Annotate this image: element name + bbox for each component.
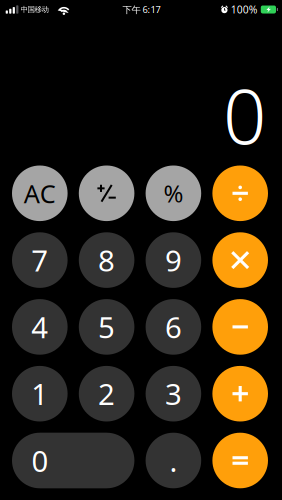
button[interactable]: Divide [212, 165, 268, 221]
button[interactable]: Plus [212, 366, 268, 421]
button[interactable]: Plus minus [79, 165, 134, 221]
staticText: 6 [165, 307, 182, 346]
button[interactable]: 0 [12, 433, 134, 488]
staticText: % [163, 177, 183, 209]
button[interactable]: 2 [79, 366, 134, 421]
staticText: 8 [98, 241, 115, 280]
button[interactable]: 9 [146, 232, 201, 288]
staticText: 4 [31, 307, 48, 346]
button[interactable]: 5 [79, 299, 134, 355]
button[interactable]: 4 [12, 299, 68, 355]
staticText: 中国移动 [21, 5, 49, 14]
staticText: 1 [31, 374, 48, 413]
staticText: 3 [165, 374, 182, 413]
button[interactable]: Multiply [212, 232, 268, 288]
button[interactable]: 7 [12, 232, 68, 288]
staticText: . [169, 441, 177, 480]
staticText: 2 [98, 374, 115, 413]
button[interactable]: % [146, 165, 201, 221]
button[interactable]: 6 [146, 299, 201, 355]
staticText: 9 [165, 241, 182, 280]
button[interactable]: Equals [212, 433, 268, 488]
staticText: 下午 6:17 [122, 3, 160, 16]
button[interactable]: . [146, 433, 201, 488]
staticText: 5 [98, 307, 115, 346]
staticText: 7 [31, 241, 48, 280]
button[interactable]: AC [12, 165, 68, 221]
button[interactable]: Minus [212, 299, 268, 355]
staticText: 0 [31, 441, 48, 480]
staticText: 0 [223, 64, 266, 165]
button[interactable]: 3 [146, 366, 201, 421]
staticText: 100% [231, 2, 258, 17]
staticText: AC [24, 176, 56, 210]
button[interactable]: 1 [12, 366, 68, 421]
button[interactable]: 8 [79, 232, 134, 288]
